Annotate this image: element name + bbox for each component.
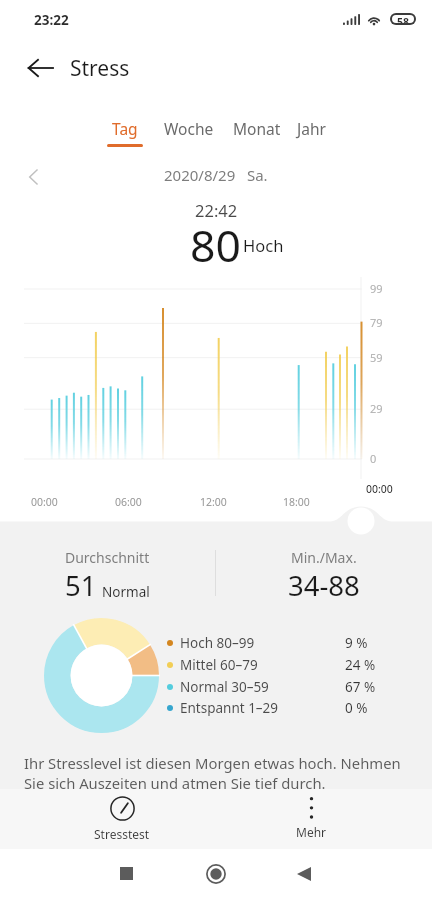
button[interactable]: Previous day (17, 161, 49, 193)
button[interactable]: Jahr (297, 118, 326, 147)
staticText: 34-88 (288, 567, 360, 604)
button[interactable]: Recents (106, 853, 147, 894)
staticText: 0 % (345, 699, 368, 716)
button[interactable]: Mehr (240, 796, 382, 840)
staticText: 2020/8/29 Sa. (164, 165, 268, 185)
staticText: Normal (102, 583, 150, 601)
staticText: Tag (112, 118, 138, 139)
staticText: 00:00 (366, 482, 393, 496)
staticText: 0 (370, 451, 377, 466)
staticText: 9 % (345, 634, 368, 651)
staticText: Hoch (243, 234, 284, 256)
button[interactable]: Home (195, 853, 236, 894)
staticText: Stress (70, 54, 130, 83)
staticText: 58 (397, 15, 410, 23)
staticText: 79 (370, 315, 383, 330)
staticText: 29 (370, 401, 383, 416)
staticText: Woche (164, 118, 214, 139)
button[interactable]: Back (20, 47, 61, 88)
button[interactable]: Tag (107, 118, 143, 147)
staticText: Durchschnitt (65, 548, 150, 567)
staticText: 22:42 (195, 199, 238, 221)
staticText: Stresstest (94, 826, 150, 842)
staticText: 80 (190, 214, 241, 275)
button[interactable]: Stresstest (50, 796, 194, 842)
staticText: Entspannt 1–29 (180, 699, 279, 716)
staticText: Mittel 60–79 (180, 656, 258, 673)
staticText: 12:00 (200, 495, 227, 509)
staticText: 24 % (345, 656, 376, 673)
staticText: Jahr (297, 118, 326, 139)
staticText: 51 (65, 567, 97, 604)
staticText: Mehr (296, 824, 327, 840)
staticText: 06:00 (115, 495, 142, 509)
staticText: Hoch 80–99 (180, 634, 255, 651)
staticText: 18:00 (283, 495, 310, 509)
button[interactable]: Woche (164, 118, 214, 147)
staticText: 67 % (345, 678, 376, 695)
staticText: 59 (370, 350, 383, 365)
staticText: Monat (233, 118, 281, 139)
staticText: 23:22 (34, 11, 69, 29)
button[interactable]: Monat (233, 118, 281, 147)
staticText: Normal 30–59 (180, 678, 269, 695)
staticText: 99 (370, 281, 383, 296)
staticText: 00:00 (31, 495, 58, 509)
button[interactable]: Back (283, 853, 324, 894)
staticText: Min./Max. (291, 548, 357, 567)
staticText: Ihr Stresslevel ist diesen Morgen etwas … (24, 753, 410, 793)
